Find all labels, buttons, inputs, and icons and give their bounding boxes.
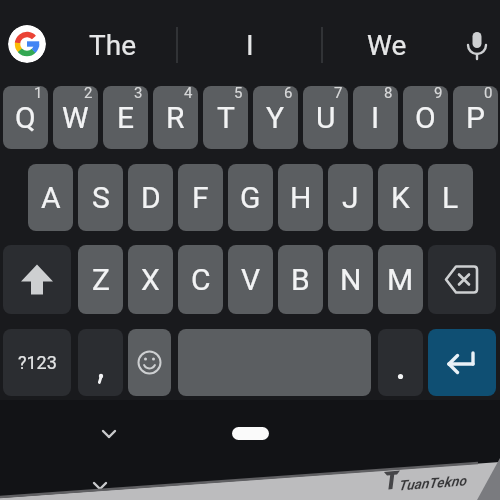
staticText: 2 [84,86,93,102]
staticText: T [217,100,235,135]
staticText: 0 [484,86,493,102]
staticText: I [246,29,254,62]
button[interactable]: We [326,15,448,75]
button[interactable]: Y [253,86,298,149]
staticText: J [342,180,359,215]
staticText: V [241,262,261,297]
button[interactable]: V [228,245,273,314]
button[interactable] [8,25,46,63]
button[interactable]: D [128,164,173,231]
staticText: The [89,29,136,62]
staticText: ?123 [18,352,57,373]
button[interactable] [457,22,497,66]
button[interactable]: H [278,164,323,231]
staticText: 8 [384,86,393,102]
button[interactable] [128,329,171,396]
button[interactable]: Z [78,245,123,314]
button[interactable] [78,329,123,396]
staticText: We [367,29,407,62]
button[interactable] [84,474,116,498]
staticText: C [191,262,211,297]
staticText: P [466,100,485,135]
staticText: F [192,180,209,215]
staticText: K [391,180,410,215]
button[interactable]: T [203,86,248,149]
button[interactable]: W [53,86,98,149]
staticText: 7 [334,86,343,102]
button[interactable] [93,420,125,448]
button[interactable]: Q [3,86,48,149]
button[interactable]: O [403,86,448,149]
staticText: Q [15,100,36,135]
staticText: U [316,100,336,135]
staticText: W [62,100,89,135]
staticText: L [442,180,459,215]
staticText: E [117,100,135,135]
staticText: TuanTekno [397,472,467,493]
staticText: X [141,262,160,297]
button[interactable] [428,245,496,314]
button[interactable]: P [453,86,498,149]
button[interactable] [378,329,423,396]
button[interactable]: The [52,15,173,75]
button[interactable]: L [428,164,473,231]
staticText: G [240,180,261,215]
staticText: 3 [134,86,143,102]
staticText: 9 [434,86,443,102]
button[interactable] [178,329,371,396]
button[interactable]: N [328,245,373,314]
button[interactable]: R [153,86,198,149]
button[interactable]: G [228,164,273,231]
staticText: Y [266,100,285,135]
button[interactable]: C [178,245,223,314]
button[interactable] [232,427,269,440]
staticText: D [141,180,161,215]
button[interactable]: ?123 [3,329,71,396]
staticText: Z [92,262,110,297]
button[interactable]: F [178,164,223,231]
button[interactable]: I [181,15,318,75]
staticText: N [340,262,362,297]
staticText: I [371,100,380,135]
staticText: O [415,100,436,135]
button[interactable]: M [378,245,423,314]
staticText: H [290,180,312,215]
button[interactable]: I [353,86,398,149]
staticText: R [166,100,185,135]
staticText: 1 [34,86,43,102]
staticText: M [387,262,414,297]
staticText: S [92,180,110,215]
button[interactable]: J [328,164,373,231]
button[interactable]: A [28,164,73,231]
staticText: 6 [284,86,293,102]
staticText: B [291,262,310,297]
button[interactable]: X [128,245,173,314]
button[interactable]: B [278,245,323,314]
button[interactable]: K [378,164,423,231]
staticText: 5 [234,86,243,102]
button[interactable] [428,329,496,396]
staticText: A [41,180,61,215]
button[interactable]: U [303,86,348,149]
button[interactable]: S [78,164,123,231]
button[interactable]: E [103,86,148,149]
button[interactable] [3,245,71,314]
staticText: 4 [184,86,193,102]
